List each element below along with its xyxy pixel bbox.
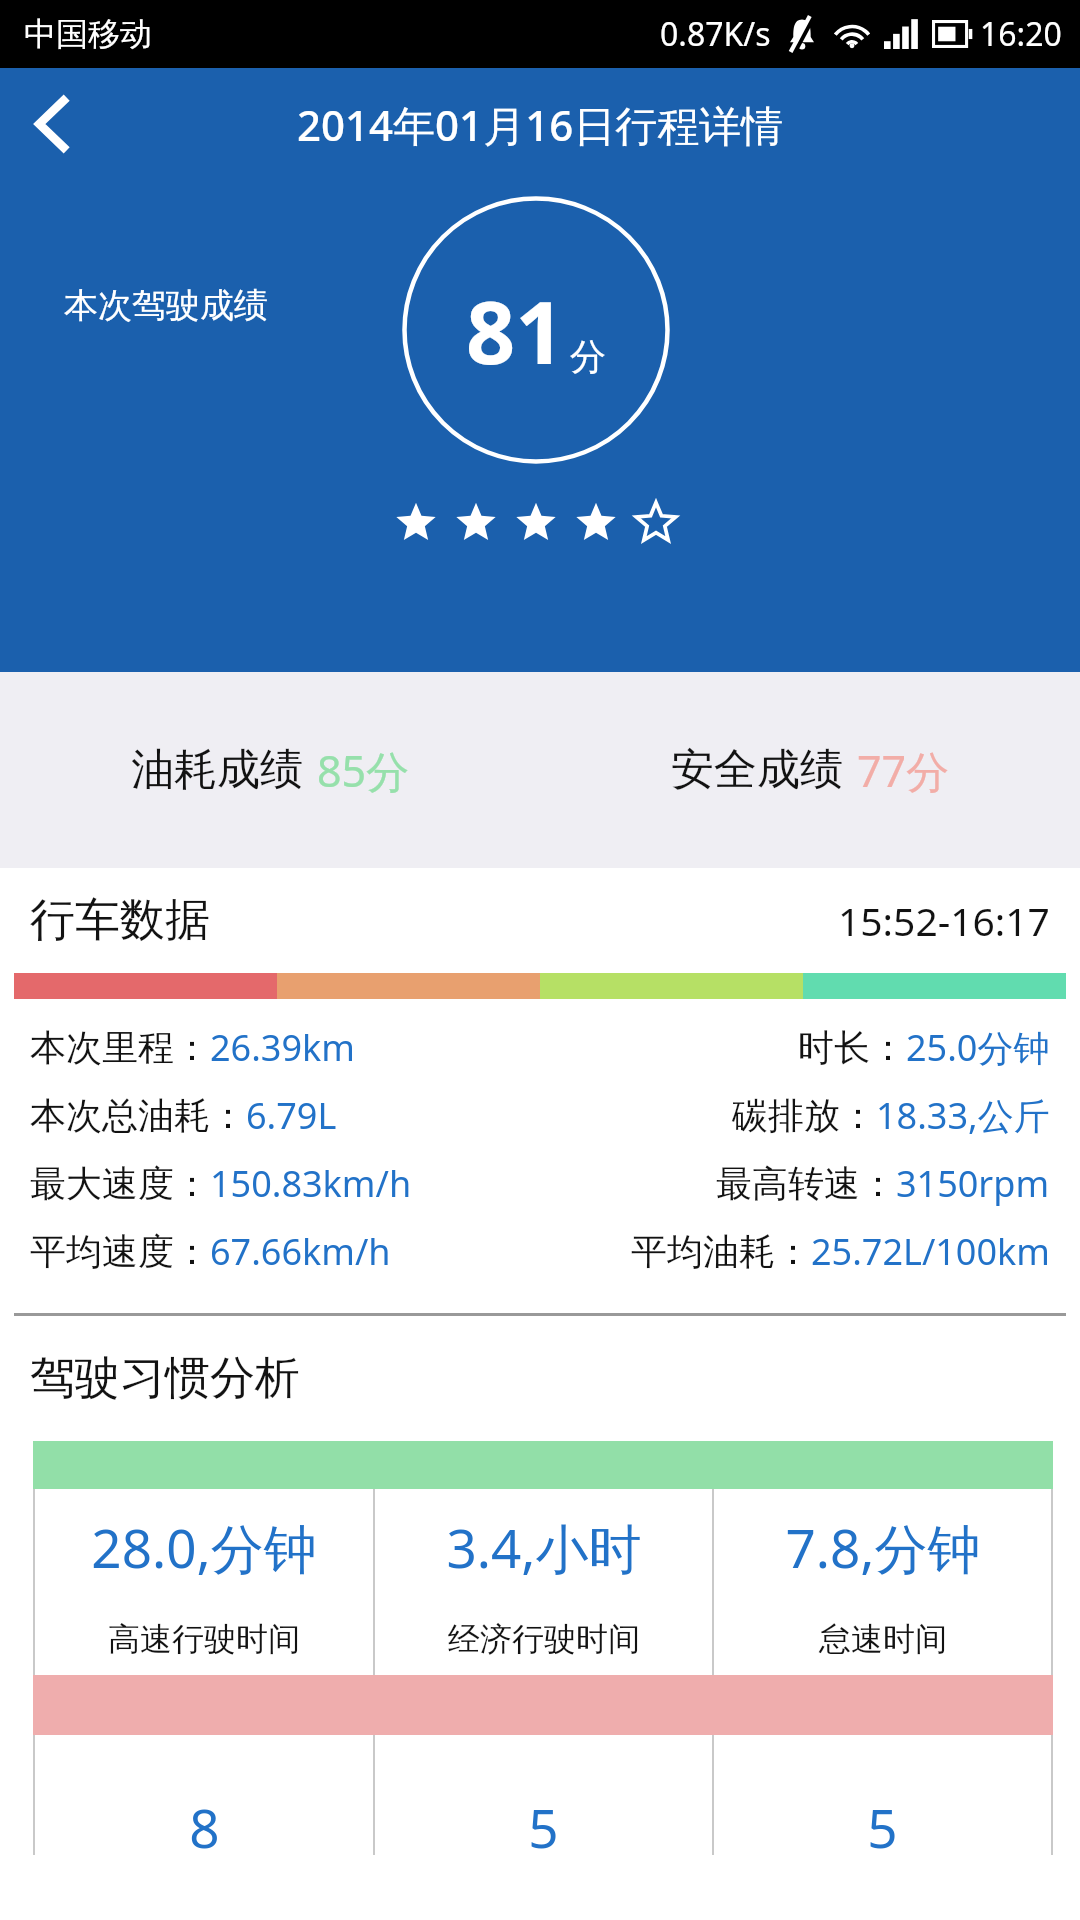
staticText: 安全成绩 [671,743,843,797]
staticText: 平均速度： [30,1229,210,1274]
staticText: 驾驶习惯分析 [30,1350,300,1407]
staticText: 25.0分钟 [906,1023,1050,1072]
staticText: 25.72L/100km [811,1227,1050,1276]
staticText: 81 [466,272,565,389]
staticText: 18.33,公斤 [876,1091,1050,1140]
staticText: 5 [528,1791,559,1855]
button[interactable]: 5 [375,1735,712,1855]
staticText: 15:52-16:17 [838,894,1050,947]
staticText: 经济行驶时间 [448,1619,640,1659]
staticText: 时长： [798,1025,906,1070]
staticText: 怠速时间 [819,1619,947,1659]
staticText: 分 [570,334,606,379]
staticText: 2014年01月16日行程详情 [297,96,784,153]
staticText: 最大速度： [30,1161,210,1206]
staticText: 26.39km [210,1023,355,1072]
button[interactable]: 3.4,小时 [375,1489,712,1675]
staticText: 最高转速： [716,1161,896,1206]
staticText: 本次总油耗： [30,1093,246,1138]
staticText: 16:20 [980,12,1062,56]
staticText: 本次里程： [30,1025,210,1070]
staticText: 150.83km/h [210,1159,412,1208]
staticText: 行车数据 [30,892,210,949]
staticText: 77分 [857,741,950,800]
staticText: 3150rpm [896,1159,1050,1208]
staticText: 油耗成绩 [131,743,303,797]
button[interactable]: 28.0,分钟 [35,1489,373,1675]
staticText: 7.8,分钟 [785,1511,981,1583]
button[interactable]: 5 [714,1735,1051,1855]
staticText: 0.87K/s [660,12,771,56]
staticText: 本次驾驶成绩 [64,284,268,327]
staticText: 高速行驶时间 [108,1619,300,1659]
button[interactable]: 8 [35,1735,373,1855]
button[interactable]: 安全成绩 [540,672,1080,868]
staticText: 平均油耗： [631,1229,811,1274]
staticText: 6.79L [246,1091,337,1140]
staticText: 67.66km/h [210,1227,391,1276]
staticText: 85分 [317,741,410,800]
button[interactable]: Back [8,79,98,169]
staticText: 5 [867,1791,898,1855]
button[interactable]: 油耗成绩 [0,672,540,868]
staticText: 8 [189,1791,220,1855]
staticText: 中国移动 [24,14,152,54]
staticText: 碳排放： [732,1093,876,1138]
staticText: 3.4,小时 [446,1511,642,1583]
staticText: 28.0,分钟 [91,1511,317,1583]
button[interactable]: 7.8,分钟 [714,1489,1051,1675]
